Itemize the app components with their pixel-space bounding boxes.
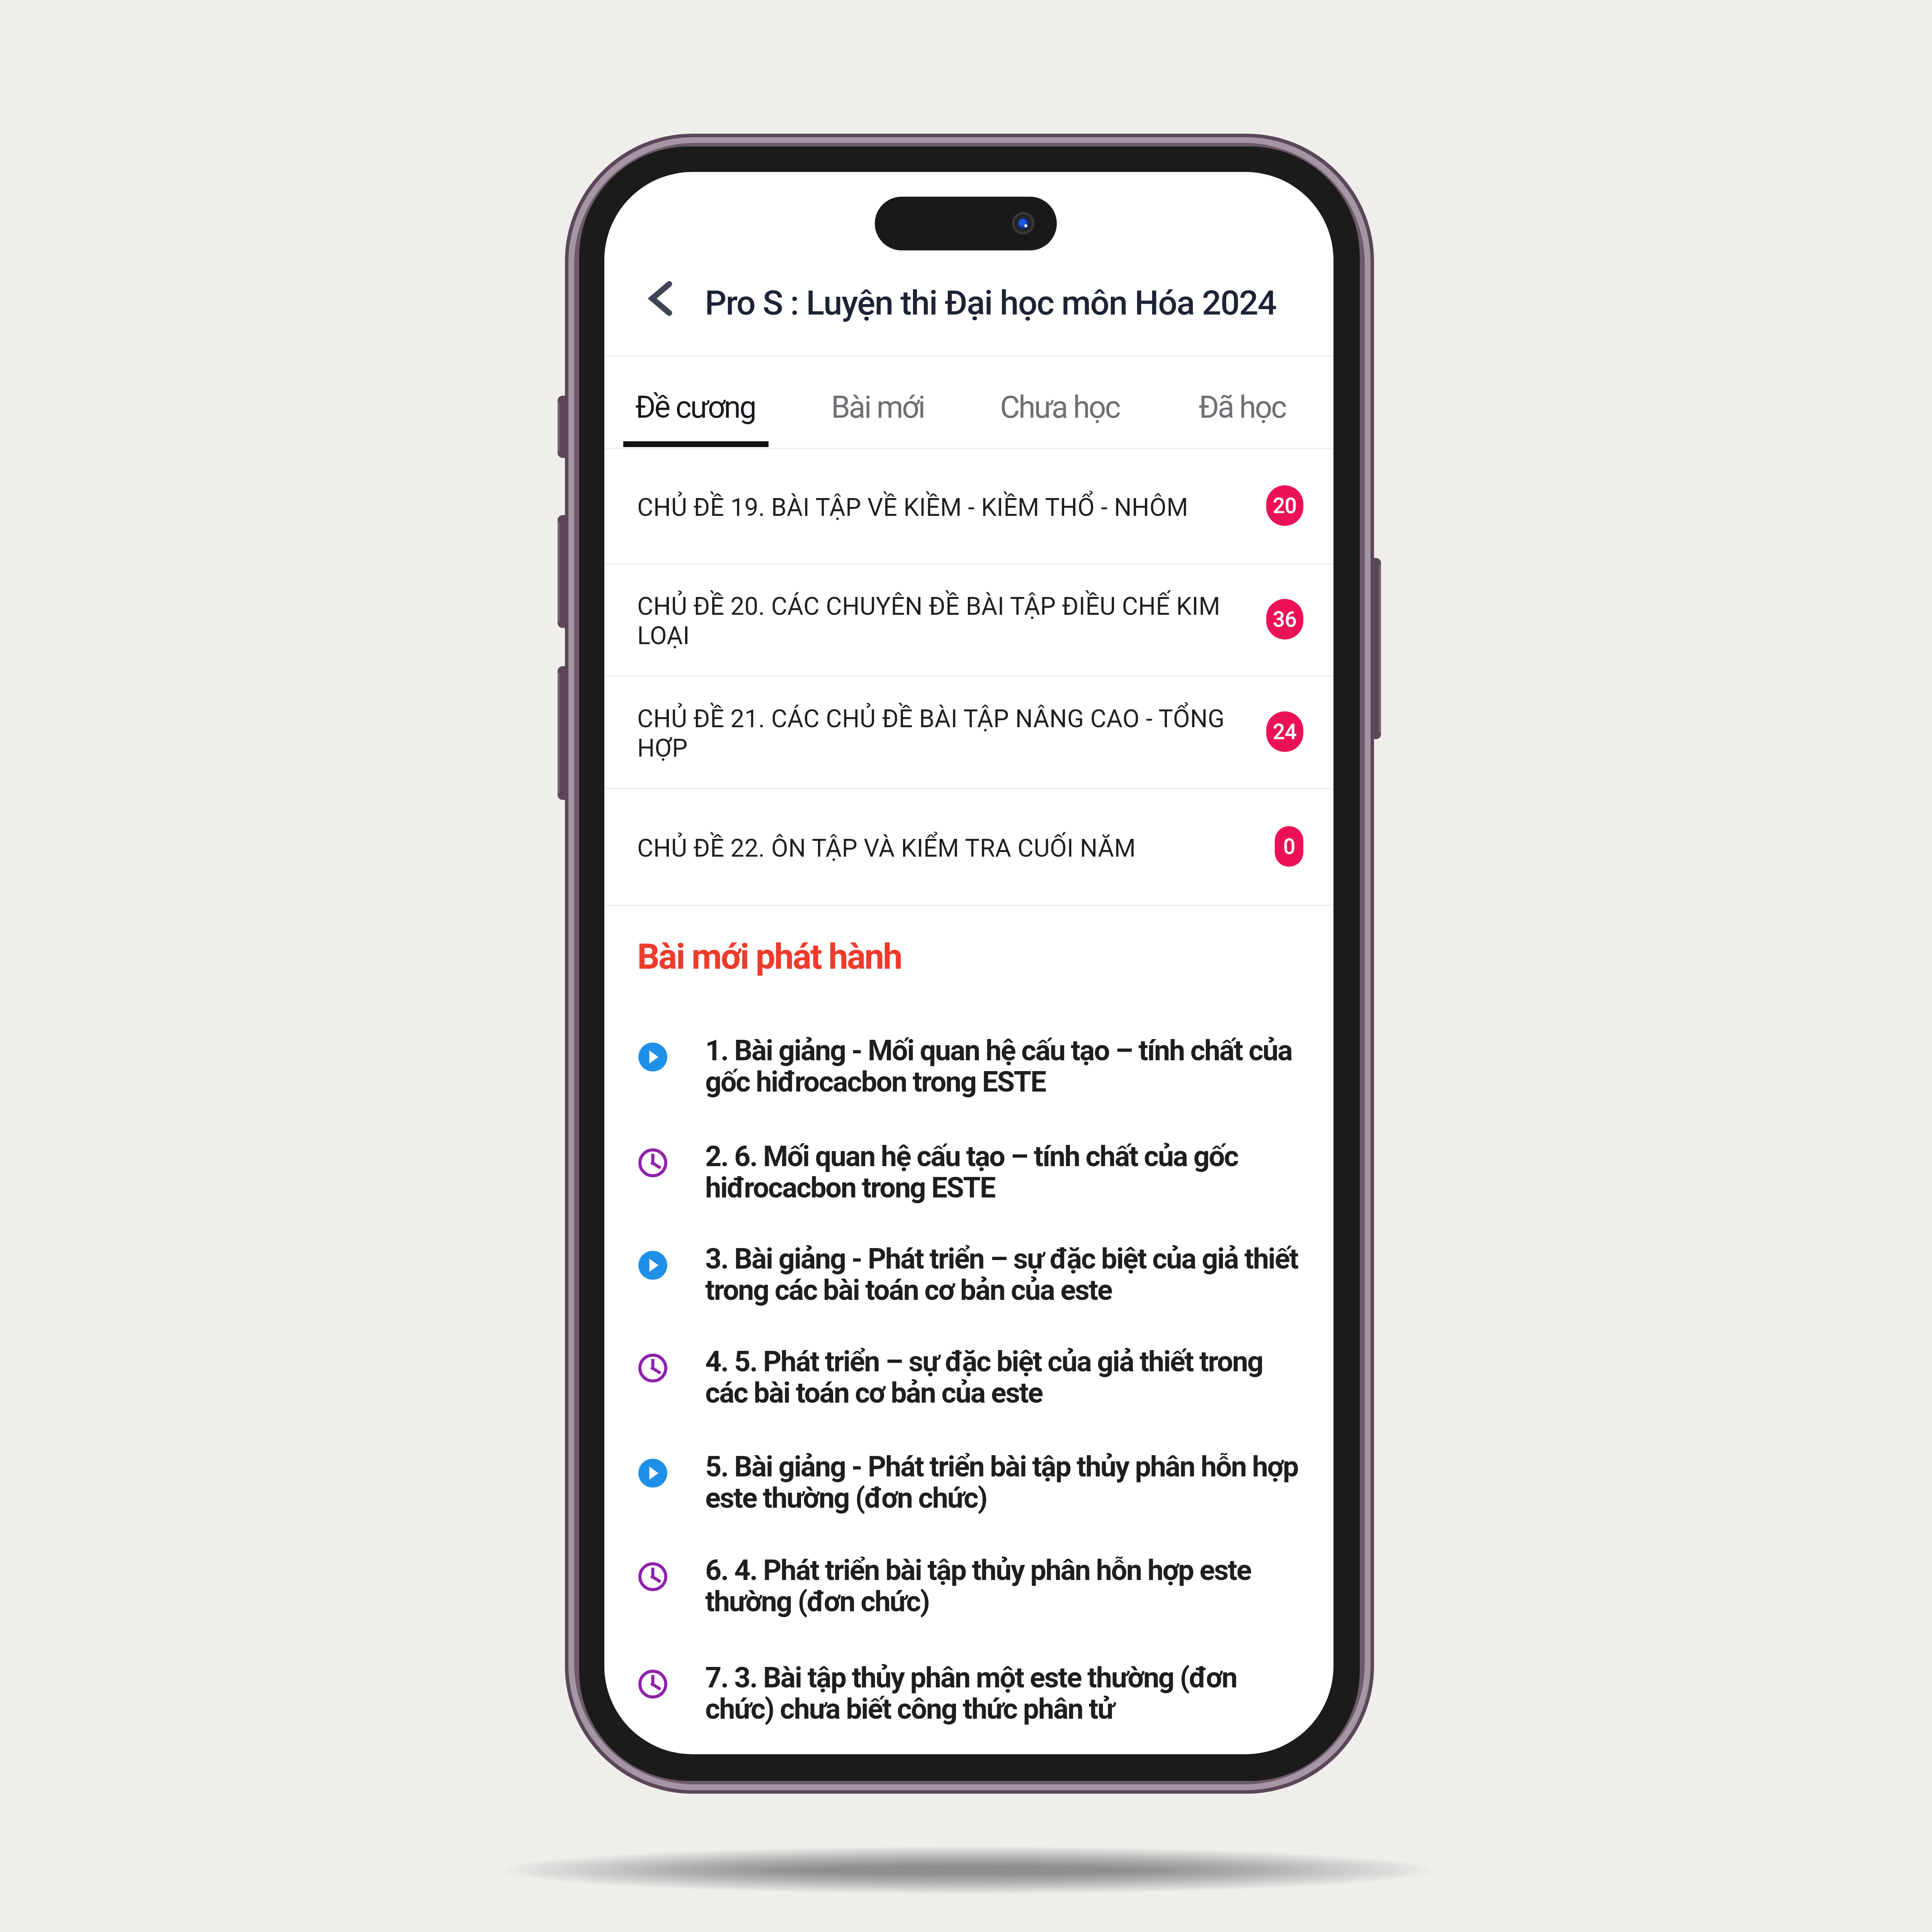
button[interactable]: Chưa học: [969, 357, 1151, 448]
staticText: CHỦ ĐỀ 22. ÔN TẬP VÀ KIỂM TRA CUỐI NĂM: [637, 834, 1252, 863]
button[interactable]: CHỦ ĐỀ 20. CÁC CHUYÊN ĐỀ BÀI TẬP ĐIỀU CH…: [604, 563, 1333, 675]
button[interactable]: 7. 3. Bài tập thủy phân một este thường …: [630, 1645, 1310, 1723]
button[interactable]: 5. Bài giảng - Phát triển bài tập thủy p…: [630, 1434, 1310, 1512]
button[interactable]: CHỦ ĐỀ 19. BÀI TẬP VỀ KIỀM - KIỀM THỔ - …: [604, 448, 1333, 563]
staticText: CHỦ ĐỀ 21. CÁC CHỦ ĐỀ BÀI TẬP NÂNG CAO -…: [637, 704, 1252, 763]
button[interactable]: Back: [626, 264, 696, 333]
button[interactable]: 4. 5. Phát triển – sự đặc biệt của giả t…: [630, 1329, 1310, 1406]
staticText: 1. Bài giảng - Mối quan hệ cấu tạo – tín…: [705, 1034, 1304, 1099]
staticText: CHỦ ĐỀ 19. BÀI TẬP VỀ KIỀM - KIỀM THỔ - …: [637, 493, 1252, 522]
button[interactable]: 6. 4. Phát triển bài tập thủy phân hỗn h…: [630, 1538, 1310, 1615]
staticText: Đề cương: [635, 389, 755, 425]
staticText: 2. 6. Mối quan hệ cấu tạo – tính chất củ…: [705, 1139, 1304, 1204]
staticText: 0: [1283, 834, 1295, 859]
staticText: 3. Bài giảng - Phát triển – sự đặc biệt …: [705, 1242, 1304, 1307]
button[interactable]: 1. Bài giảng - Mối quan hệ cấu tạo – tín…: [630, 1018, 1310, 1095]
button[interactable]: Đã học: [1151, 357, 1333, 448]
staticText: 7. 3. Bài tập thủy phân một este thường …: [705, 1661, 1304, 1726]
button[interactable]: 3. Bài giảng - Phát triển – sự đặc biệt …: [630, 1226, 1310, 1304]
staticText: Pro S : Luyện thi Đại học môn Hóa 2024: [705, 283, 1276, 323]
staticText: 4. 5. Phát triển – sự đặc biệt của giả t…: [705, 1345, 1304, 1410]
staticText: Đã học: [1199, 389, 1286, 425]
staticText: 36: [1273, 607, 1297, 632]
button[interactable]: Đề cương: [604, 357, 786, 448]
staticText: CHỦ ĐỀ 20. CÁC CHUYÊN ĐỀ BÀI TẬP ĐIỀU CH…: [637, 592, 1252, 650]
staticText: 24: [1273, 719, 1297, 744]
staticText: 20: [1273, 493, 1297, 518]
staticText: Bài mới phát hành: [637, 936, 901, 978]
staticText: 6. 4. Phát triển bài tập thủy phân hỗn h…: [705, 1553, 1304, 1618]
button[interactable]: 2. 6. Mối quan hệ cấu tạo – tính chất củ…: [630, 1124, 1310, 1201]
button[interactable]: Bài mới: [786, 357, 969, 448]
staticText: 5. Bài giảng - Phát triển bài tập thủy p…: [705, 1450, 1304, 1515]
button[interactable]: CHỦ ĐỀ 21. CÁC CHỦ ĐỀ BÀI TẬP NÂNG CAO -…: [604, 675, 1333, 788]
staticText: Chưa học: [1000, 389, 1120, 425]
button[interactable]: CHỦ ĐỀ 22. ÔN TẬP VÀ KIỂM TRA CUỐI NĂM: [604, 788, 1333, 905]
staticText: Bài mới: [831, 389, 924, 425]
